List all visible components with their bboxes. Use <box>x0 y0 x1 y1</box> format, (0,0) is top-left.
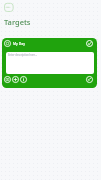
staticText: Targets <box>4 17 31 27</box>
button[interactable]: Send <box>86 76 93 83</box>
staticText: Enter description here... <box>8 53 38 57</box>
button[interactable]: Target <box>4 40 11 47</box>
button[interactable]: Enter description here... <box>6 52 94 74</box>
staticText: My Day <box>13 41 25 46</box>
button[interactable]: Info <box>20 76 27 83</box>
button[interactable]: Menu <box>3 2 14 13</box>
button[interactable]: Done <box>86 40 93 47</box>
button[interactable]: Add <box>12 76 19 83</box>
button[interactable]: Attach image <box>4 76 11 83</box>
